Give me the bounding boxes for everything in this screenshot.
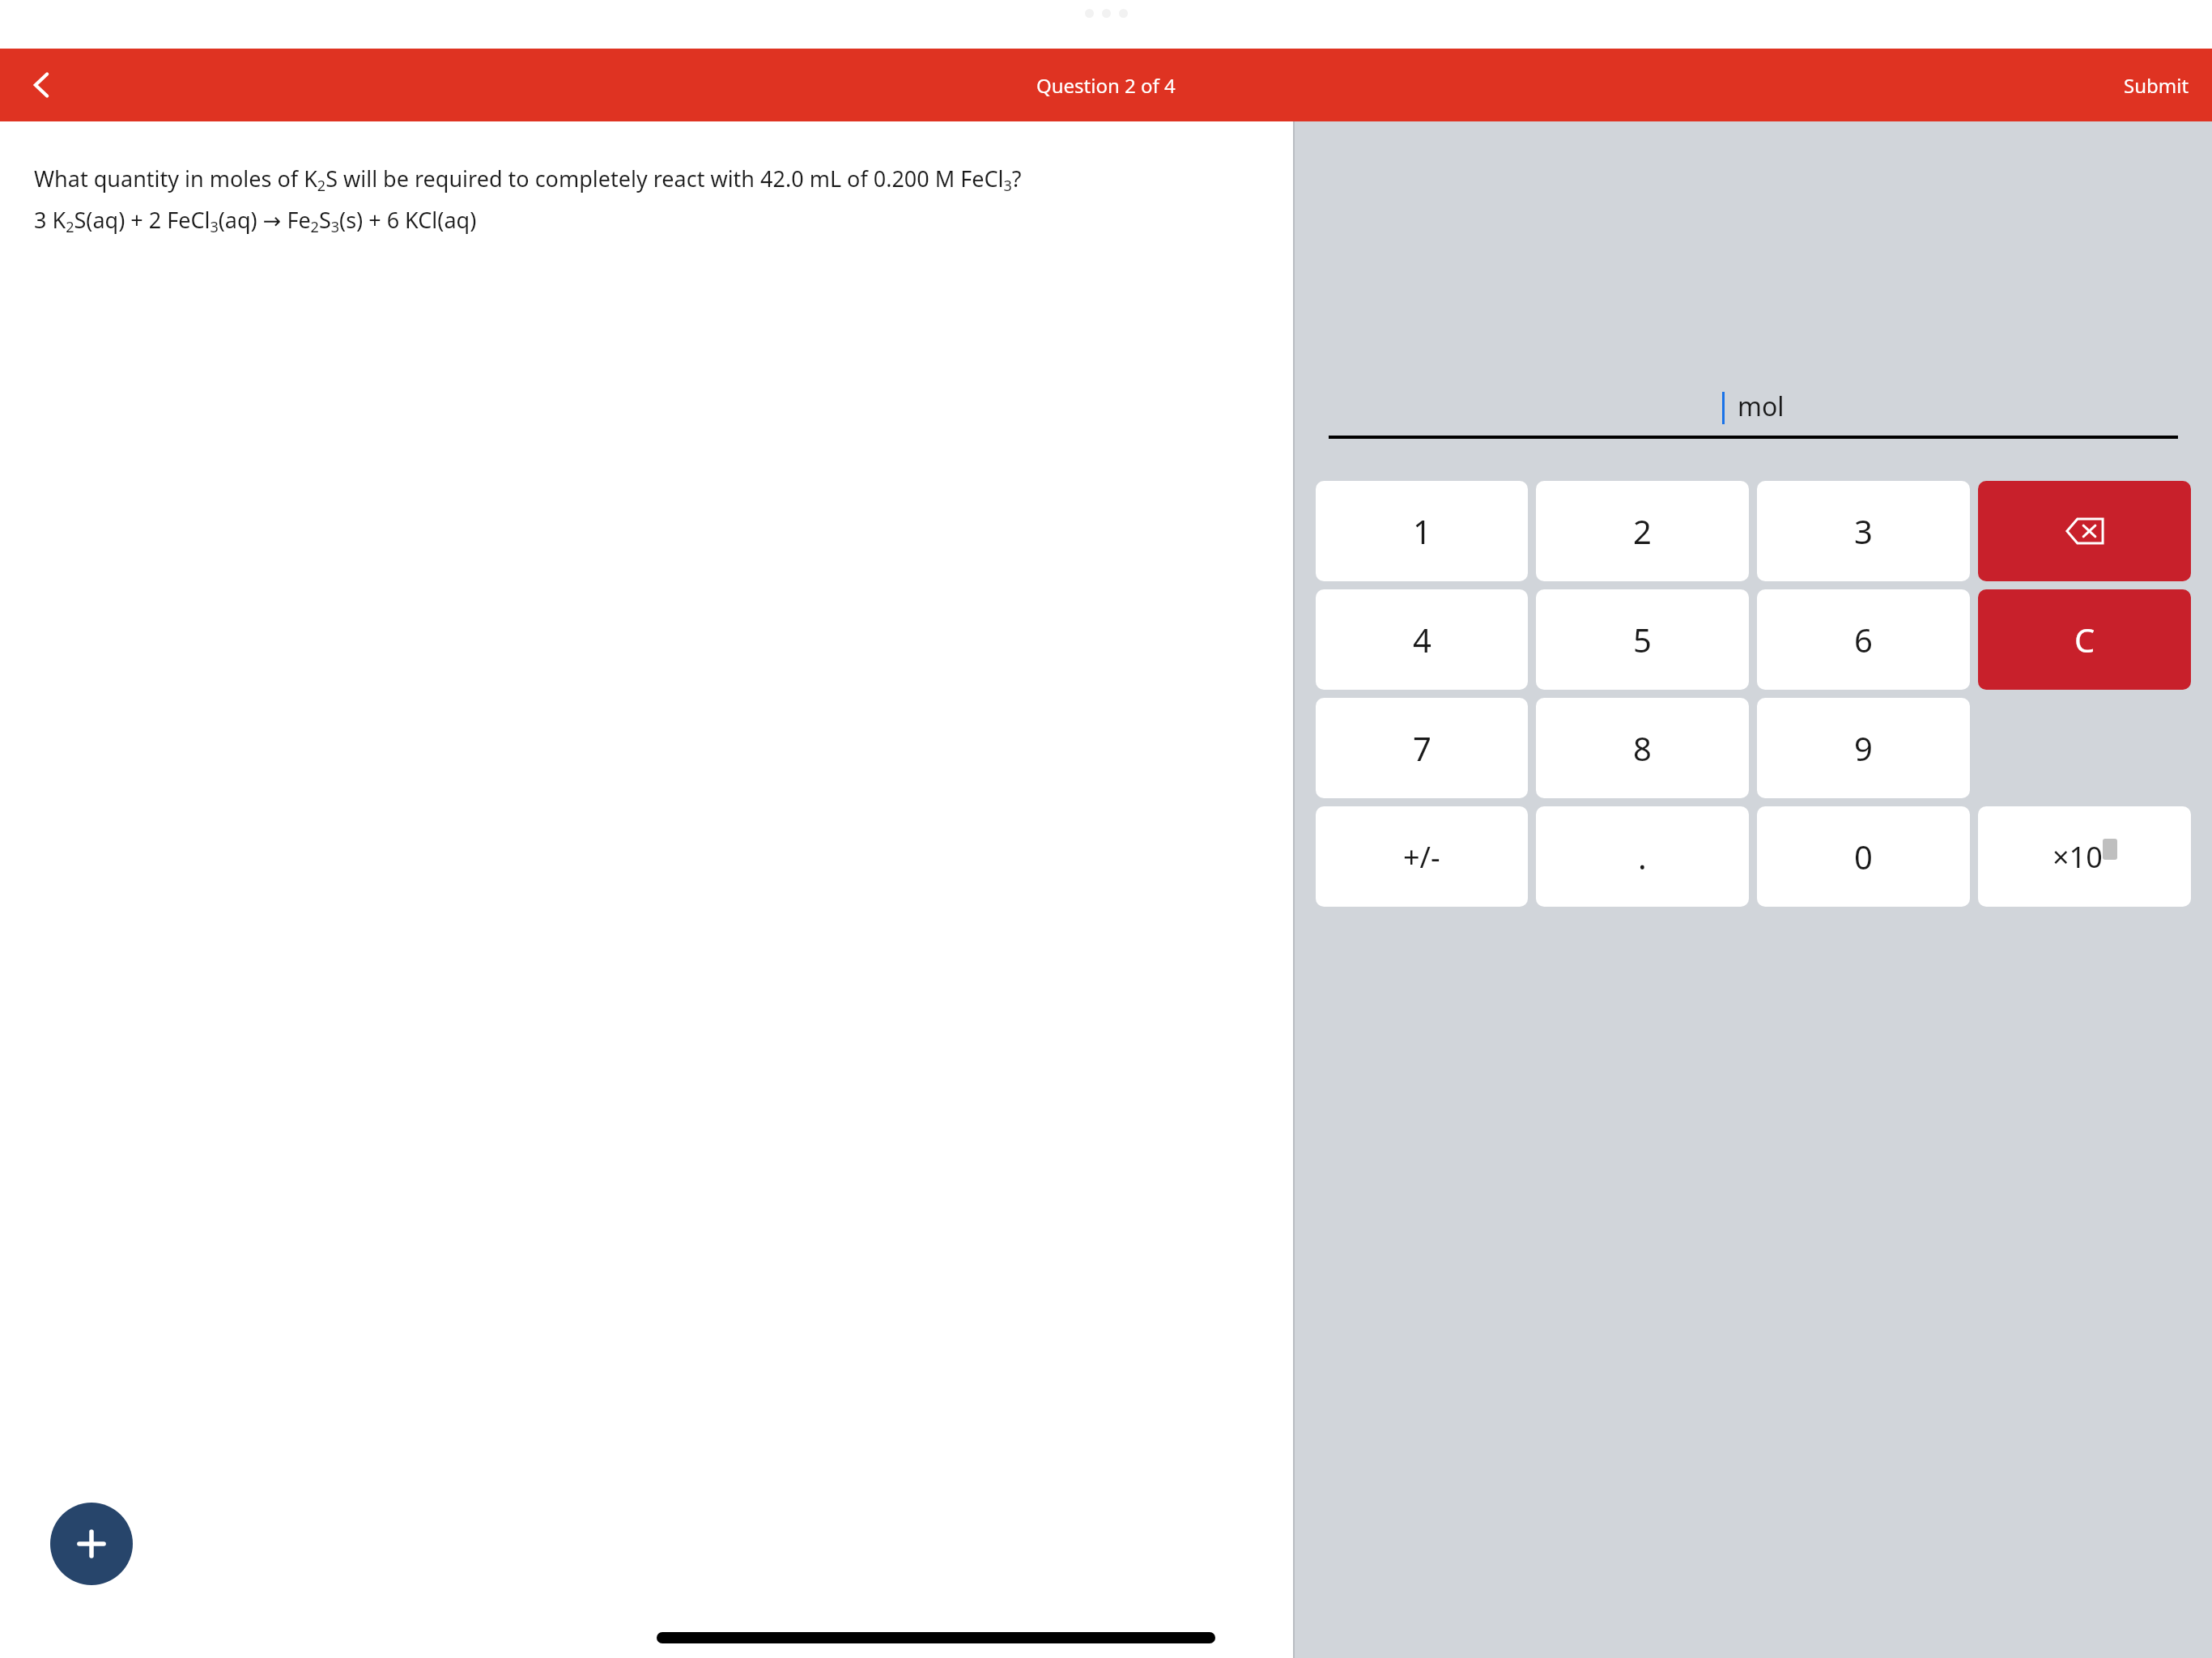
staticText: C [2074,618,2095,661]
button[interactable]: 2 [1536,481,1749,581]
button[interactable]: 5 [1536,589,1749,690]
button[interactable]: Back [18,61,66,109]
staticText: Submit [2124,72,2189,99]
button[interactable]: 7 [1316,698,1528,798]
staticText: Question 2 of 4 [1036,72,1176,99]
staticText: . [1638,835,1647,878]
staticText: 6 [1854,618,1873,661]
button[interactable]: +/- [1316,806,1528,907]
staticText: ×10 [2052,837,2103,877]
staticText: 7 [1413,726,1431,770]
staticText: 2 [1633,509,1652,553]
staticText: 9 [1854,726,1873,770]
button[interactable]: Backspace [1978,481,2191,581]
button[interactable]: 0 [1757,806,1970,907]
button[interactable]: 6 [1757,589,1970,690]
button[interactable]: 9 [1757,698,1970,798]
button[interactable]: Submit [2101,61,2212,110]
button[interactable]: Add [50,1503,133,1585]
staticText: 8 [1633,726,1652,770]
button[interactable]: 3 [1757,481,1970,581]
staticText: +/- [1403,837,1440,877]
staticText: mol [1738,389,1784,424]
button[interactable]: ×10 [1978,806,2191,907]
staticText: 5 [1633,618,1652,661]
button[interactable]: 8 [1536,698,1749,798]
staticText: 3 [1854,509,1873,553]
staticText: 4 [1413,618,1431,661]
staticText: 1 [1413,509,1431,553]
staticText: What quantity in moles of K2S will be re… [34,164,1022,195]
staticText: 3 K2S(aq) + 2 FeCl3(aq) → Fe2S3(s) + 6 K… [34,205,477,236]
button[interactable]: 1 [1316,481,1528,581]
staticText: 0 [1854,835,1873,878]
button[interactable]: C [1978,589,2191,690]
button[interactable]: 4 [1316,589,1528,690]
button[interactable]: . [1536,806,1749,907]
